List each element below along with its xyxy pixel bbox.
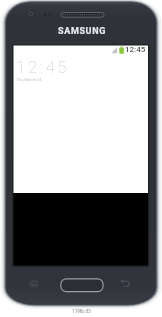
staticText: Thu, March 14 <box>16 77 42 82</box>
staticText: SAMSUNG <box>58 26 106 37</box>
staticText: 1198c-33 <box>72 309 91 314</box>
button[interactable]: Home <box>61 278 103 291</box>
staticText: 12:45 <box>125 45 146 54</box>
staticText: 12:45 <box>16 57 70 77</box>
button[interactable]: Menu <box>26 276 42 290</box>
button[interactable]: Back <box>117 276 133 290</box>
